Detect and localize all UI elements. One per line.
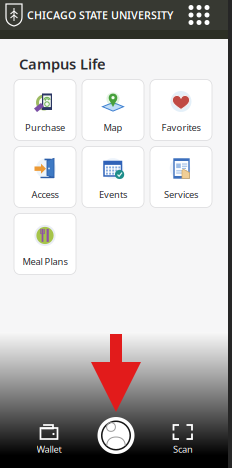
- button[interactable]: Events: [82, 146, 144, 207]
- button[interactable]: Wallet: [0, 410, 98, 468]
- button[interactable]: Scan: [134, 410, 232, 468]
- staticText: Wallet: [36, 443, 61, 455]
- staticText: Map: [103, 121, 122, 133]
- staticText: Services: [164, 188, 198, 200]
- staticText: Campus Life: [19, 54, 106, 73]
- staticText: Favorites: [161, 121, 200, 133]
- staticText: Access: [31, 188, 58, 200]
- staticText: Events: [99, 188, 127, 200]
- staticText: Scan: [173, 443, 193, 455]
- staticText: Purchase: [25, 121, 65, 133]
- button[interactable]: Meal Plans: [14, 213, 76, 274]
- button[interactable]: App menu: [185, 1, 213, 29]
- button[interactable]: Access: [14, 146, 76, 207]
- button[interactable]: Purchase: [14, 79, 76, 140]
- button[interactable]: Map: [82, 79, 144, 140]
- button[interactable]: Services: [150, 146, 212, 207]
- button[interactable]: Favorites: [150, 79, 212, 140]
- staticText: CHICAGO STATE UNIVERSITY: [27, 8, 173, 22]
- button[interactable]: Profile: [98, 410, 134, 468]
- staticText: Meal Plans: [22, 255, 67, 267]
